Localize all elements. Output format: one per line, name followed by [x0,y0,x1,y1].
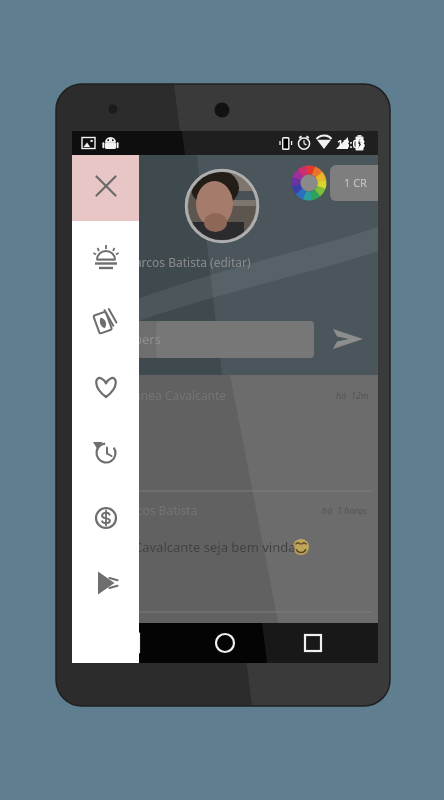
button[interactable]: Close navigation drawer [86,166,126,206]
button[interactable]: Favorites [86,368,126,408]
button[interactable]: Home [207,625,243,661]
staticText: há 12m [336,389,369,401]
staticText: Cavalcante seja bem vinda [134,538,296,556]
button[interactable]: Recent apps [295,625,331,661]
button[interactable]: History [86,433,126,473]
staticText: cinea Cavalcante [132,387,227,403]
button[interactable]: Cards [86,303,126,343]
button[interactable]: Payments [86,498,126,538]
button[interactable]: Play Store [86,563,126,603]
staticText: pers [134,330,161,348]
staticText: 13:03 [337,136,366,151]
button[interactable]: Back [116,625,152,661]
staticText: há 1 horas [322,504,367,516]
button[interactable]: Home [86,238,126,278]
staticText: 1 CR [344,175,367,190]
staticText: Marcos Batista (editar) [124,254,251,270]
staticText: rcos Batista [132,502,198,518]
staticText: cinea Cavalcante [132,624,227,640]
